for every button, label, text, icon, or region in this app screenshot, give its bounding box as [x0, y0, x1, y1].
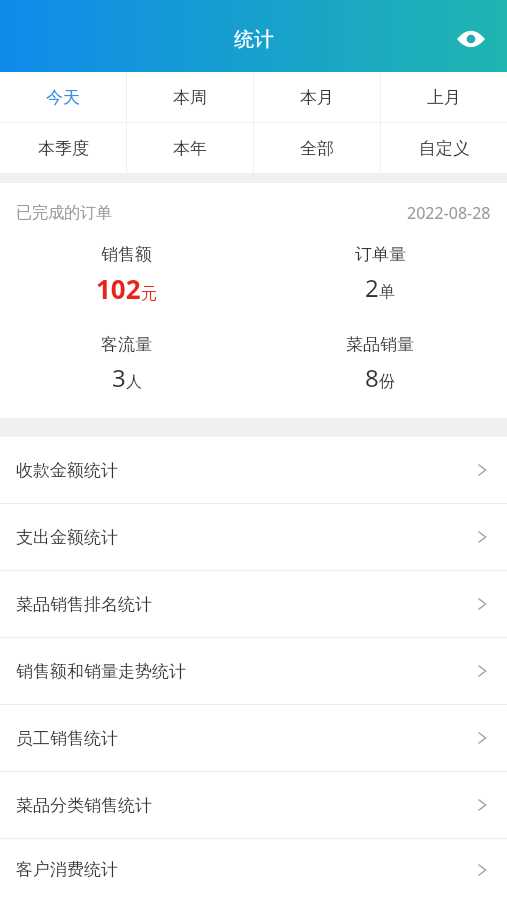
button[interactable]: 收款金额统计: [0, 437, 507, 503]
staticText: 全部: [300, 138, 334, 159]
staticText: 单: [379, 282, 395, 302]
staticText: 2: [365, 271, 379, 304]
button[interactable]: 菜品分类销售统计: [0, 772, 507, 838]
button[interactable]: Toggle visibility: [449, 17, 493, 61]
staticText: 份: [379, 372, 395, 392]
staticText: 本季度: [38, 138, 89, 159]
staticText: 订单量: [355, 244, 406, 265]
staticText: 人: [126, 372, 142, 392]
staticText: 客流量: [101, 334, 152, 355]
button[interactable]: 本季度: [0, 123, 126, 173]
button[interactable]: 本周: [127, 72, 253, 122]
button[interactable]: 上月: [381, 72, 507, 122]
staticText: 8: [365, 361, 379, 394]
staticText: 已完成的订单: [16, 203, 112, 223]
staticText: 本周: [173, 87, 207, 108]
staticText: 销售额和销量走势统计: [16, 661, 186, 682]
staticText: 员工销售统计: [16, 728, 118, 749]
button[interactable]: 支出金额统计: [0, 504, 507, 570]
staticText: 客户消费统计: [16, 859, 118, 880]
staticText: 收款金额统计: [16, 460, 118, 481]
button[interactable]: 菜品销售排名统计: [0, 571, 507, 637]
button[interactable]: 自定义: [381, 123, 507, 173]
button[interactable]: 本月: [254, 72, 380, 122]
button[interactable]: 客户消费统计: [0, 839, 507, 900]
staticText: 菜品销售排名统计: [16, 594, 152, 615]
button[interactable]: 本年: [127, 123, 253, 173]
staticText: 今天: [46, 87, 80, 108]
staticText: 本月: [300, 87, 334, 108]
staticText: 2022-08-28: [407, 202, 491, 224]
staticText: 支出金额统计: [16, 527, 118, 548]
staticText: 上月: [427, 87, 461, 108]
staticText: 销售额: [101, 244, 152, 265]
button[interactable]: 销售额和销量走势统计: [0, 638, 507, 704]
staticText: 统计: [234, 27, 274, 52]
staticText: 3: [112, 361, 126, 394]
button[interactable]: 今天: [0, 72, 126, 122]
staticText: 自定义: [419, 138, 470, 159]
staticText: 菜品销量: [346, 334, 414, 355]
button[interactable]: 全部: [254, 123, 380, 173]
staticText: 本年: [173, 138, 207, 159]
staticText: 菜品分类销售统计: [16, 795, 152, 816]
staticText: 102: [96, 271, 141, 306]
button[interactable]: 员工销售统计: [0, 705, 507, 771]
staticText: 元: [141, 284, 157, 304]
